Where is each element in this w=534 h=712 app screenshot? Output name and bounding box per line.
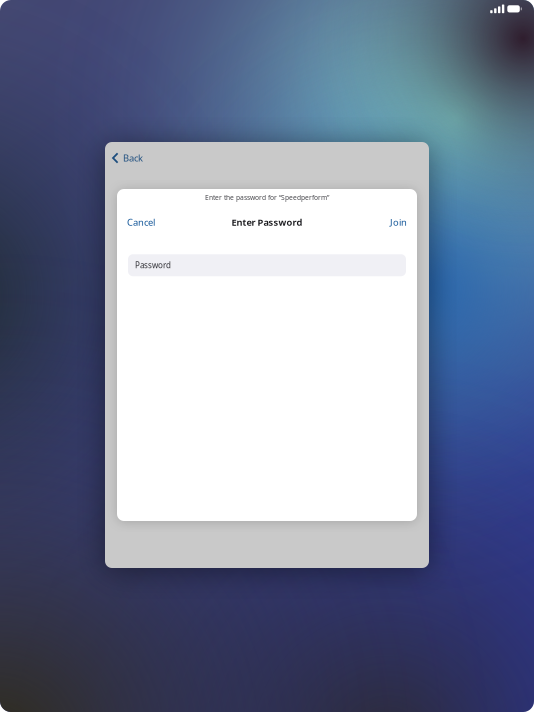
staticText: Enter the password for “Speedperform” bbox=[205, 193, 329, 202]
staticText: Password bbox=[135, 260, 171, 270]
button[interactable]: Cancel bbox=[117, 211, 165, 233]
staticText: Join bbox=[390, 216, 407, 228]
staticText: Enter Password bbox=[231, 216, 302, 228]
button[interactable]: Join bbox=[380, 211, 417, 233]
staticText: Back bbox=[123, 152, 143, 164]
button[interactable]: Back bbox=[105, 146, 143, 170]
staticText: Cancel bbox=[127, 216, 155, 228]
button[interactable]: Password bbox=[128, 254, 406, 276]
